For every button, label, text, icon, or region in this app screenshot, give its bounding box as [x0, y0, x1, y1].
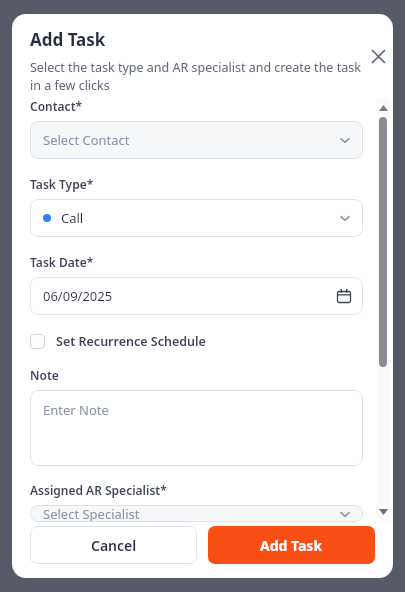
staticText: Note: [30, 367, 59, 383]
button[interactable]: Select Contact: [30, 121, 363, 159]
staticText: Cancel: [91, 536, 137, 555]
button[interactable]: Close: [364, 42, 392, 70]
button[interactable]: 06/09/2025: [30, 277, 363, 315]
staticText: Set Recurrence Schedule: [56, 333, 206, 350]
staticText: 06/09/2025: [43, 287, 113, 305]
button[interactable]: Add Task: [208, 526, 375, 564]
staticText: Task Type*: [30, 176, 94, 192]
staticText: Enter Note: [43, 401, 109, 419]
button[interactable]: Cancel: [30, 526, 197, 564]
staticText: Add Task: [260, 536, 323, 555]
staticText: Select the task type and AR specialist a…: [30, 59, 375, 94]
button[interactable]: Scroll down: [377, 507, 389, 517]
staticText: Task Date*: [30, 254, 94, 270]
staticText: Assigned AR Specialist*: [30, 482, 167, 498]
button[interactable]: Select Specialist: [30, 505, 363, 522]
staticText: Add Task: [30, 28, 106, 51]
staticText: Call: [61, 209, 84, 227]
staticText: Select Specialist: [43, 505, 140, 522]
button[interactable]: Scroll up: [377, 103, 389, 113]
button[interactable]: Call: [30, 199, 363, 237]
staticText: Select Contact: [43, 131, 130, 149]
button[interactable]: Enter Note: [30, 390, 363, 466]
staticText: Contact*: [30, 98, 83, 114]
button[interactable]: Set Recurrence Schedule: [30, 329, 206, 353]
